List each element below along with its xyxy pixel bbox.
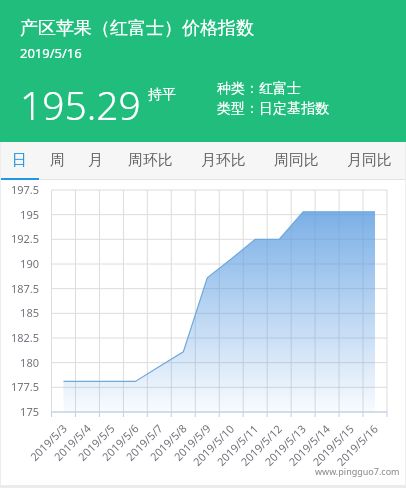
staticText: 周	[50, 151, 65, 170]
staticText: 周同比	[274, 151, 319, 170]
staticText: 185	[20, 305, 39, 320]
button[interactable]: 周环比	[114, 142, 187, 180]
staticText: 182.5	[10, 330, 39, 345]
button[interactable]: 月环比	[187, 142, 260, 180]
button[interactable]: 日	[0, 142, 38, 180]
staticText: 197.5	[10, 182, 39, 197]
staticText: 周环比	[128, 151, 173, 170]
staticText: 种类：红富士	[217, 80, 301, 98]
staticText: 187.5	[10, 281, 39, 296]
staticText: 192.5	[10, 231, 39, 246]
button[interactable]: 周同比	[260, 142, 333, 180]
staticText: 日	[12, 151, 27, 170]
staticText: 180	[20, 355, 39, 370]
staticText: 产区苹果（红富士）价格指数	[20, 17, 254, 40]
button[interactable]: 月	[76, 142, 114, 180]
staticText: 177.5	[10, 379, 39, 394]
staticText: www.pingguo7.com	[315, 465, 400, 477]
staticText: 月环比	[201, 151, 246, 170]
staticText: 持平	[148, 86, 176, 104]
staticText: 195	[20, 207, 39, 222]
staticText: 月	[88, 151, 103, 170]
staticText: 195.29	[20, 78, 141, 131]
staticText: 190	[20, 256, 39, 271]
button[interactable]: 周	[38, 142, 76, 180]
staticText: 2019/5/16	[20, 44, 82, 62]
staticText: 175	[20, 404, 39, 419]
staticText: 月同比	[347, 151, 392, 170]
staticText: 类型：日定基指数	[217, 100, 329, 118]
button[interactable]: 月同比	[333, 142, 406, 180]
